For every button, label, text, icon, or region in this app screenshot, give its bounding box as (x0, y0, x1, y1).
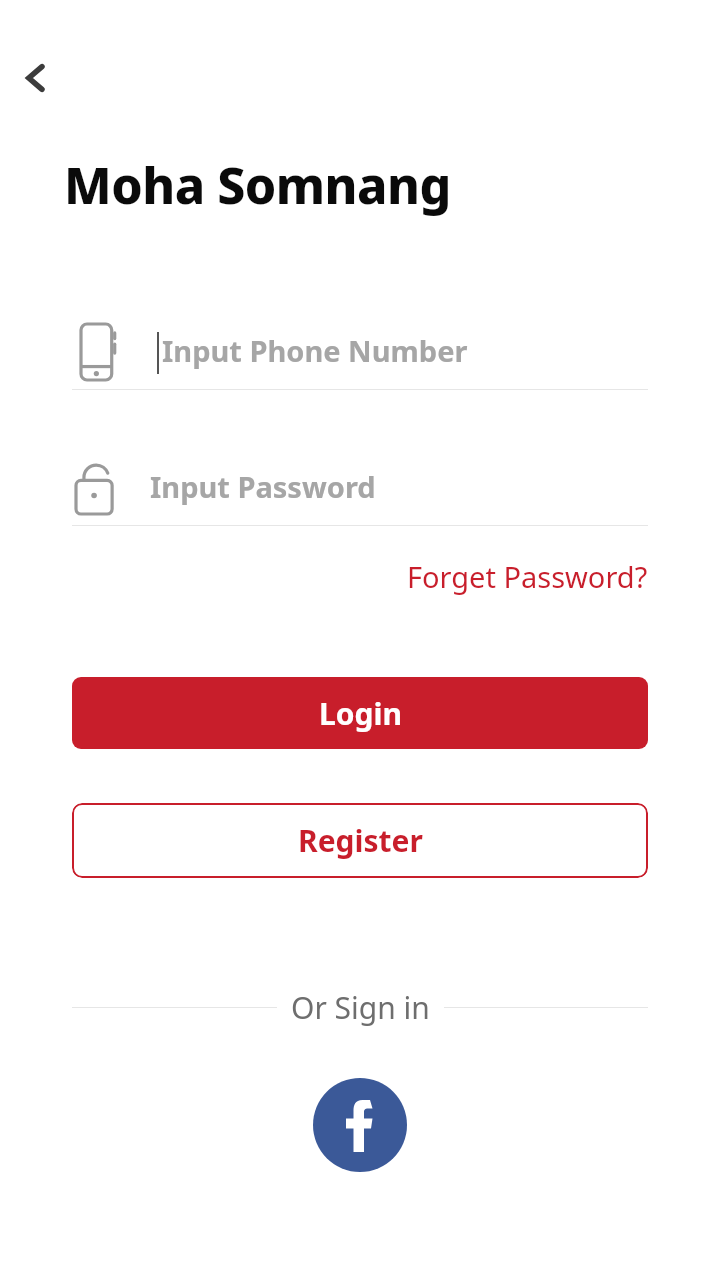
button[interactable]: Forget Password? (340, 548, 648, 604)
button[interactable]: Input Password (72, 448, 648, 526)
staticText: Register (298, 820, 423, 861)
button[interactable]: Login (72, 677, 648, 749)
button[interactable]: Input Phone Number (72, 312, 648, 390)
staticText: Moha Somnang (64, 151, 451, 219)
staticText: Or Sign in (291, 987, 430, 1028)
button[interactable]: Sign in with Facebook (313, 1078, 407, 1172)
button[interactable]: Register (72, 803, 648, 878)
staticText: Forget Password? (407, 557, 648, 596)
button[interactable]: Back (0, 42, 72, 114)
staticText: Input Phone Number (162, 331, 468, 370)
staticText: Login (319, 693, 402, 734)
staticText: Input Password (150, 467, 376, 506)
